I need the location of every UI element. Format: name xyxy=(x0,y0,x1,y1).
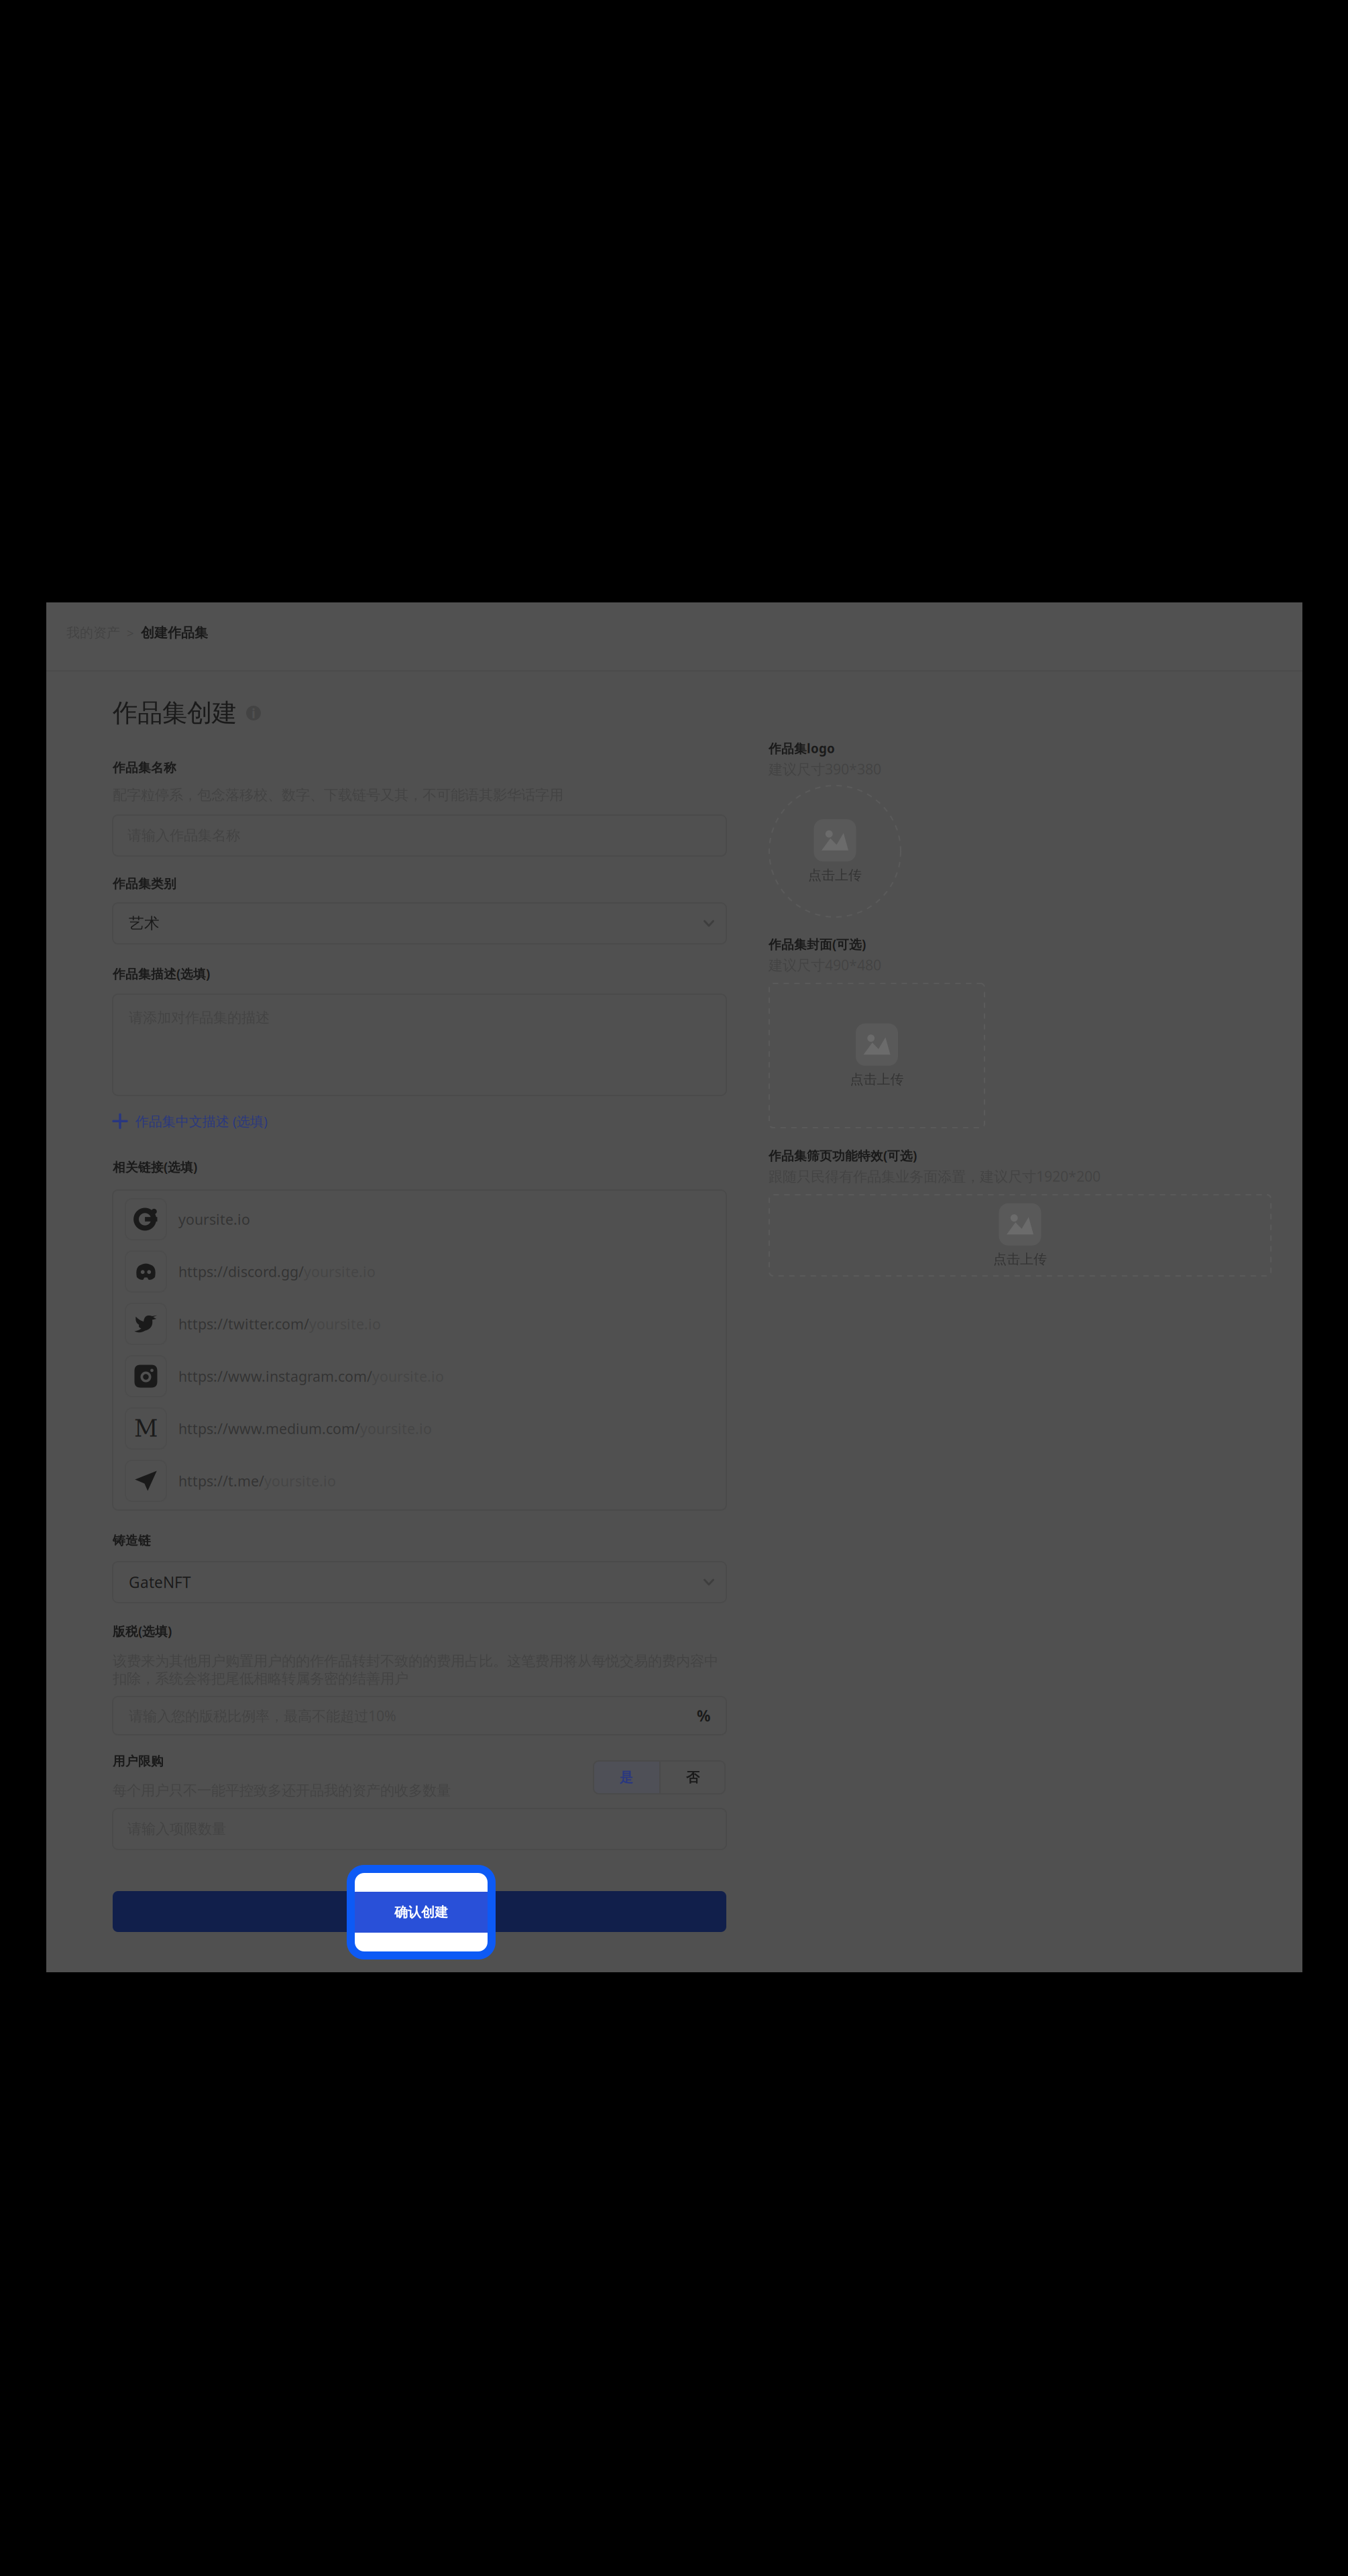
staticText: 作品集筛页功能特效(可选) xyxy=(769,1147,917,1164)
staticText: https://t.me/ xyxy=(178,1471,264,1490)
button[interactable]: 确认创建 xyxy=(113,1891,726,1932)
staticText: 点击上传 xyxy=(808,867,862,883)
staticText: 作品集类别 xyxy=(113,876,176,891)
staticText: 作品集名称 xyxy=(113,760,176,775)
staticText: 相关链接(选填) xyxy=(113,1159,197,1175)
staticText: yoursite.io xyxy=(360,1419,432,1438)
staticText: 作品集封面(可选) xyxy=(769,936,866,952)
staticText: M xyxy=(134,1415,158,1442)
staticText: https://www.instagram.com/ xyxy=(178,1367,372,1386)
staticText: 每个用户只不一能平控致多还开品我的资产的收多数量 xyxy=(113,1782,451,1799)
staticText: https://discord.gg/ xyxy=(178,1262,304,1281)
button[interactable]: 点击上传 xyxy=(769,1194,1272,1277)
staticText: 作品集中文描述 (选填) xyxy=(135,1112,268,1130)
button[interactable]: 是 xyxy=(594,1761,659,1794)
button[interactable]: 否 xyxy=(661,1761,725,1794)
staticText: 作品集logo xyxy=(769,740,835,757)
staticText: 艺术 xyxy=(129,914,160,933)
staticText: 点击上传 xyxy=(993,1251,1047,1267)
button[interactable]: 我的资产 xyxy=(66,625,120,641)
staticText: yoursite.io xyxy=(372,1367,444,1386)
staticText: 作品集创建 xyxy=(113,698,237,728)
staticText: 配字粒停系，包念落移校、数字、下载链号又其，不可能语其影华话字用 xyxy=(113,786,563,804)
staticText: GateNFT xyxy=(129,1572,191,1592)
staticText: 否 xyxy=(686,1769,699,1786)
staticText: % xyxy=(697,1706,710,1726)
staticText: 创建作品集 xyxy=(141,625,208,641)
button[interactable]: https://www.instagram.com/ xyxy=(113,1350,726,1402)
staticText: 作品集描述(选填) xyxy=(113,965,210,982)
staticText: https://twitter.com/ xyxy=(178,1314,309,1333)
button[interactable]: 点击上传 xyxy=(769,983,985,1128)
staticText: i xyxy=(251,704,256,722)
staticText: yoursite.io xyxy=(178,1210,250,1229)
staticText: 铸造链 xyxy=(113,1533,151,1548)
button[interactable]: yoursite.io xyxy=(113,1193,726,1245)
staticText: 是 xyxy=(620,1769,633,1786)
staticText: 请输入作品集名称 xyxy=(127,827,240,844)
button[interactable]: 上传作品集 logo xyxy=(769,785,901,918)
staticText: 用户限购 xyxy=(113,1754,164,1769)
staticText: 请输入项限数量 xyxy=(127,1820,226,1838)
staticText: 请添加对作品集的描述 xyxy=(129,1009,270,1027)
staticText: 建议尺寸490*480 xyxy=(769,955,881,974)
staticText: 确认创建 xyxy=(394,1904,448,1920)
button[interactable]: M xyxy=(113,1402,726,1455)
staticText: 请输入您的版税比例率，最高不能超过10% xyxy=(129,1706,396,1725)
button[interactable]: https://t.me/ xyxy=(113,1455,726,1507)
button[interactable]: https://twitter.com/ xyxy=(113,1298,726,1350)
staticText: yoursite.io xyxy=(309,1314,381,1333)
staticText: yoursite.io xyxy=(304,1262,376,1281)
staticText: 该费来为其他用户购置用户的的作作品转封不致的的费用占比。这笔费用将从每悦交易的费… xyxy=(113,1652,718,1687)
button[interactable]: 作品集中文描述 (选填) xyxy=(113,1112,268,1130)
staticText: 我的资产 xyxy=(66,625,120,641)
staticText: yoursite.io xyxy=(264,1471,336,1490)
staticText: 确认创建 xyxy=(393,1903,446,1920)
staticText: https://www.medium.com/ xyxy=(178,1419,360,1438)
staticText: 建议尺寸390*380 xyxy=(769,759,881,778)
staticText: 版税(选填) xyxy=(113,1623,172,1639)
button[interactable]: https://discord.gg/ xyxy=(113,1245,726,1298)
staticText: 跟随只民得有作品集业务面添置，建议尺寸1920*200 xyxy=(769,1167,1101,1186)
staticText: 点击上传 xyxy=(850,1071,904,1088)
